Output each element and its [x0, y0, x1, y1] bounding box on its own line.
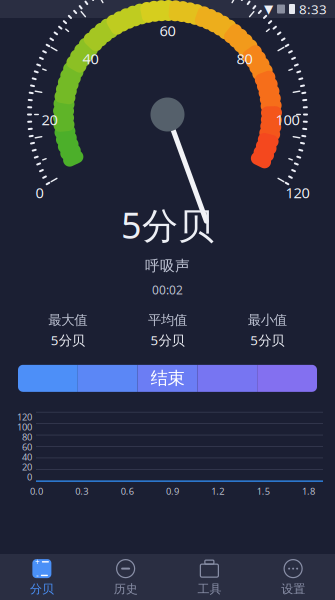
- staticText: 20: [41, 110, 57, 129]
- staticText: 0.0: [30, 485, 43, 497]
- staticText: 0.3: [75, 485, 88, 497]
- staticText: 60: [22, 441, 32, 453]
- staticText: 5分贝: [250, 331, 284, 349]
- staticText: ▼: [264, 2, 273, 16]
- button[interactable]: 设置: [251, 553, 335, 600]
- staticText: 设置: [281, 582, 305, 596]
- staticText: 1.8: [302, 485, 315, 497]
- staticText: 40: [82, 49, 98, 68]
- staticText: 120: [285, 183, 309, 202]
- staticText: 00:02: [152, 282, 183, 298]
- staticText: +: [35, 556, 40, 567]
- button[interactable]: 工具: [167, 553, 251, 600]
- staticText: 历史: [114, 582, 138, 596]
- staticText: 5分贝: [121, 201, 214, 249]
- staticText: 0: [35, 183, 43, 202]
- button[interactable]: +: [0, 553, 84, 600]
- staticText: 100: [275, 110, 299, 129]
- staticText: 8:33: [299, 0, 327, 18]
- staticText: 工具: [197, 582, 221, 596]
- staticText: 60: [159, 21, 175, 40]
- staticText: 80: [22, 431, 32, 443]
- staticText: 0.6: [121, 485, 134, 497]
- staticText: -: [36, 570, 39, 581]
- staticText: 20: [22, 461, 32, 473]
- button[interactable]: 历史: [84, 553, 168, 600]
- staticText: 最大值: [48, 312, 87, 328]
- staticText: 100: [17, 421, 32, 433]
- staticText: 80: [236, 49, 252, 68]
- button[interactable]: 结束: [18, 365, 317, 392]
- staticText: 0: [27, 471, 32, 483]
- staticText: 最小值: [248, 312, 287, 328]
- staticText: 结束: [150, 368, 184, 389]
- staticText: 平均值: [148, 312, 187, 328]
- staticText: 5分贝: [150, 331, 184, 349]
- staticText: 120: [17, 411, 32, 423]
- staticText: 0.9: [166, 485, 179, 497]
- staticText: 1.5: [257, 485, 270, 497]
- staticText: 分贝: [30, 582, 54, 596]
- staticText: 5分贝: [51, 331, 85, 349]
- staticText: 1.2: [211, 485, 224, 497]
- staticText: 呼吸声: [145, 257, 190, 275]
- staticText: 40: [22, 451, 32, 463]
